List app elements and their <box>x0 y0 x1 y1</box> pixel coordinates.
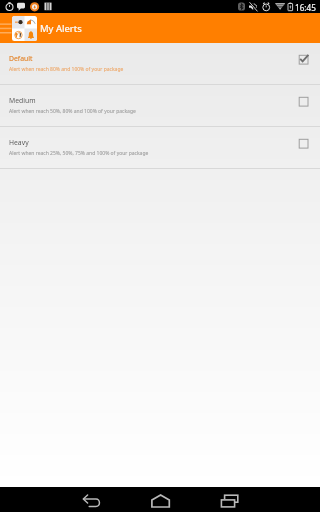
staticText: Default <box>9 54 33 63</box>
button[interactable]: Open navigation drawer <box>0 13 13 43</box>
button[interactable]: Home <box>136 487 184 512</box>
button[interactable]: Medium <box>0 85 320 127</box>
button[interactable]: Recent apps <box>205 487 253 512</box>
staticText: Heavy <box>9 138 29 147</box>
staticText: 16:45 <box>295 2 316 13</box>
staticText: Alert when reach 80% and 100% of your pa… <box>9 66 124 73</box>
staticText: My Alerts <box>40 22 82 35</box>
button[interactable]: Back <box>67 487 115 512</box>
button[interactable]: Default <box>0 43 320 85</box>
staticText: Alert when reach 50%, 80% and 100% of yo… <box>9 108 136 115</box>
staticText: Medium <box>9 96 36 105</box>
button[interactable]: App icon <box>12 16 37 41</box>
staticText: Alert when reach 25%, 50%, 75% and 100% … <box>9 150 149 157</box>
button[interactable]: Heavy <box>0 127 320 169</box>
